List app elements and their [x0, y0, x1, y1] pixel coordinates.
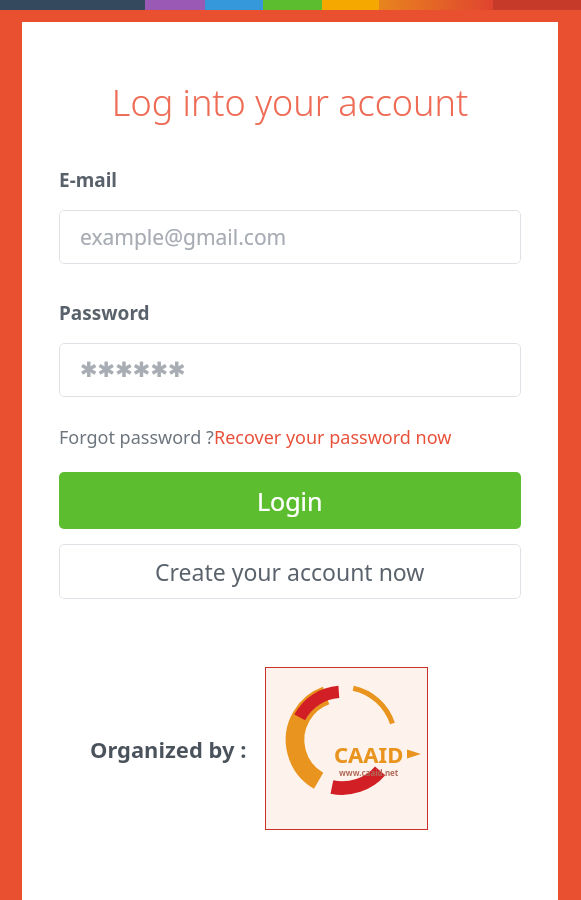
staticText: Login	[257, 484, 323, 518]
button[interactable]: ✱✱✱✱✱✱	[59, 343, 521, 397]
other: CAAID logo	[265, 667, 428, 830]
staticText: CAAID	[334, 739, 404, 769]
staticText: E-mail	[59, 167, 117, 193]
staticText: Password	[59, 300, 150, 326]
button[interactable]: Recover your password now	[214, 425, 452, 450]
staticText: Create your account now	[155, 556, 425, 587]
button[interactable]: Login	[59, 472, 521, 529]
button[interactable]: Create your account now	[59, 544, 521, 599]
staticText: ✱✱✱✱✱✱	[80, 358, 186, 382]
staticText: example@gmail.com	[80, 223, 287, 252]
staticText: www.caaid.net	[339, 767, 399, 778]
staticText: Log into your account	[22, 78, 558, 127]
staticText: Forgot password ?	[59, 425, 214, 450]
button[interactable]: example@gmail.com	[59, 210, 521, 264]
staticText: Organized by :	[90, 734, 247, 764]
